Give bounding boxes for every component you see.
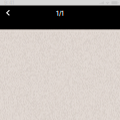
staticText: 9:41	[4, 0, 14, 6]
button[interactable]: Back	[2, 7, 15, 18]
staticText: 1/1	[56, 10, 64, 17]
